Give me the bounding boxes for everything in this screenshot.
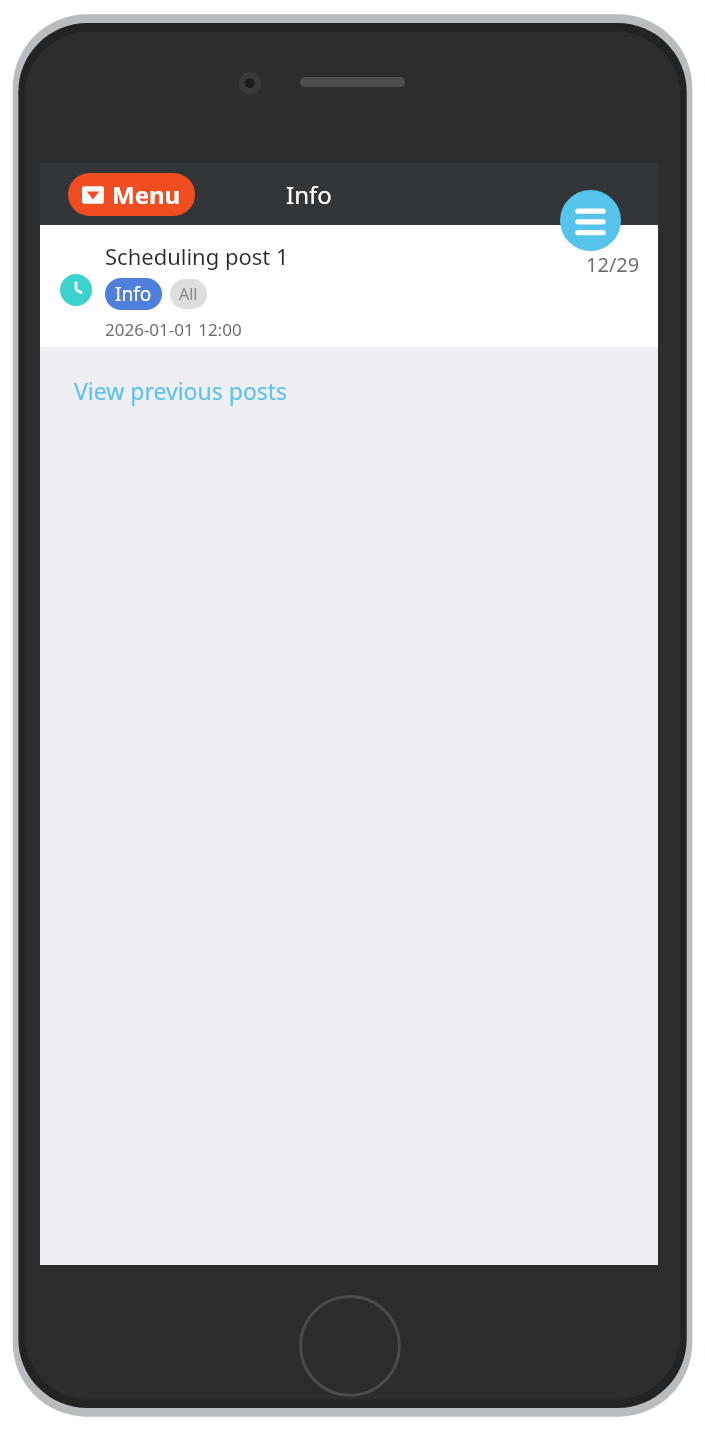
staticText: 2026-01-01 12:00 [105, 318, 242, 341]
staticText: Info [115, 281, 152, 307]
staticText: 12/29 [586, 251, 640, 278]
button[interactable]: Menu [68, 173, 195, 216]
button[interactable]: Open navigation menu [560, 190, 621, 251]
button[interactable]: View previous posts [40, 361, 658, 420]
staticText: View previous posts [74, 375, 288, 406]
button[interactable]: Scheduling post 1 [40, 225, 658, 347]
staticText: All [179, 283, 198, 305]
staticText: Menu [112, 178, 181, 211]
staticText: Info [286, 178, 332, 211]
staticText: Scheduling post 1 [105, 241, 289, 271]
